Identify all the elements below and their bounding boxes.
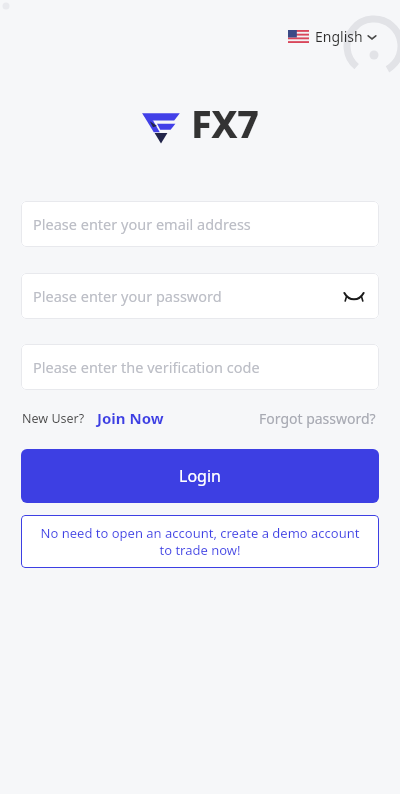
staticText: FX7 [191,97,259,149]
staticText: Login [179,465,221,487]
button[interactable]: Please enter your email address [21,201,379,247]
button[interactable]: Login [21,449,379,503]
button[interactable]: No need to open an account, create a dem… [21,515,379,568]
staticText: Please enter the verification code [33,357,367,377]
button[interactable]: Please enter the verification code [21,344,379,390]
staticText: English [315,27,363,46]
staticText: Please enter your email address [33,214,367,234]
button[interactable]: Join Now [95,406,166,430]
button[interactable]: Forgot password? [257,407,378,430]
staticText: Forgot password? [259,409,376,428]
button[interactable]: Please enter your password [21,273,379,319]
button[interactable]: Show password [341,283,367,309]
staticText: No need to open an account, create a dem… [35,524,365,559]
staticText: New User? [22,410,85,427]
staticText: Please enter your password [33,286,341,306]
staticText: Join Now [97,408,164,428]
button[interactable]: English [284,24,382,49]
